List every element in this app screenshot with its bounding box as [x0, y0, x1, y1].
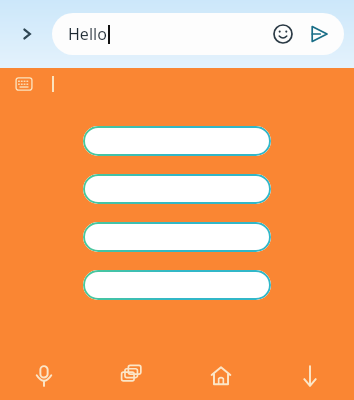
staticText: Hello — [68, 23, 107, 45]
button[interactable]: Send — [304, 19, 334, 49]
button[interactable]: Keyboard — [12, 72, 36, 96]
button[interactable]: Emoji — [268, 19, 298, 49]
button[interactable]: Voice input — [0, 352, 88, 400]
button[interactable]: Hello — [52, 13, 344, 55]
button[interactable]: Expand — [10, 17, 44, 51]
button[interactable]: Scroll down — [265, 352, 354, 400]
button[interactable] — [83, 270, 271, 300]
button[interactable]: Home — [176, 352, 265, 400]
button[interactable] — [83, 174, 271, 204]
button[interactable] — [83, 126, 271, 156]
button[interactable] — [83, 222, 271, 252]
button[interactable]: Recents — [88, 352, 176, 400]
